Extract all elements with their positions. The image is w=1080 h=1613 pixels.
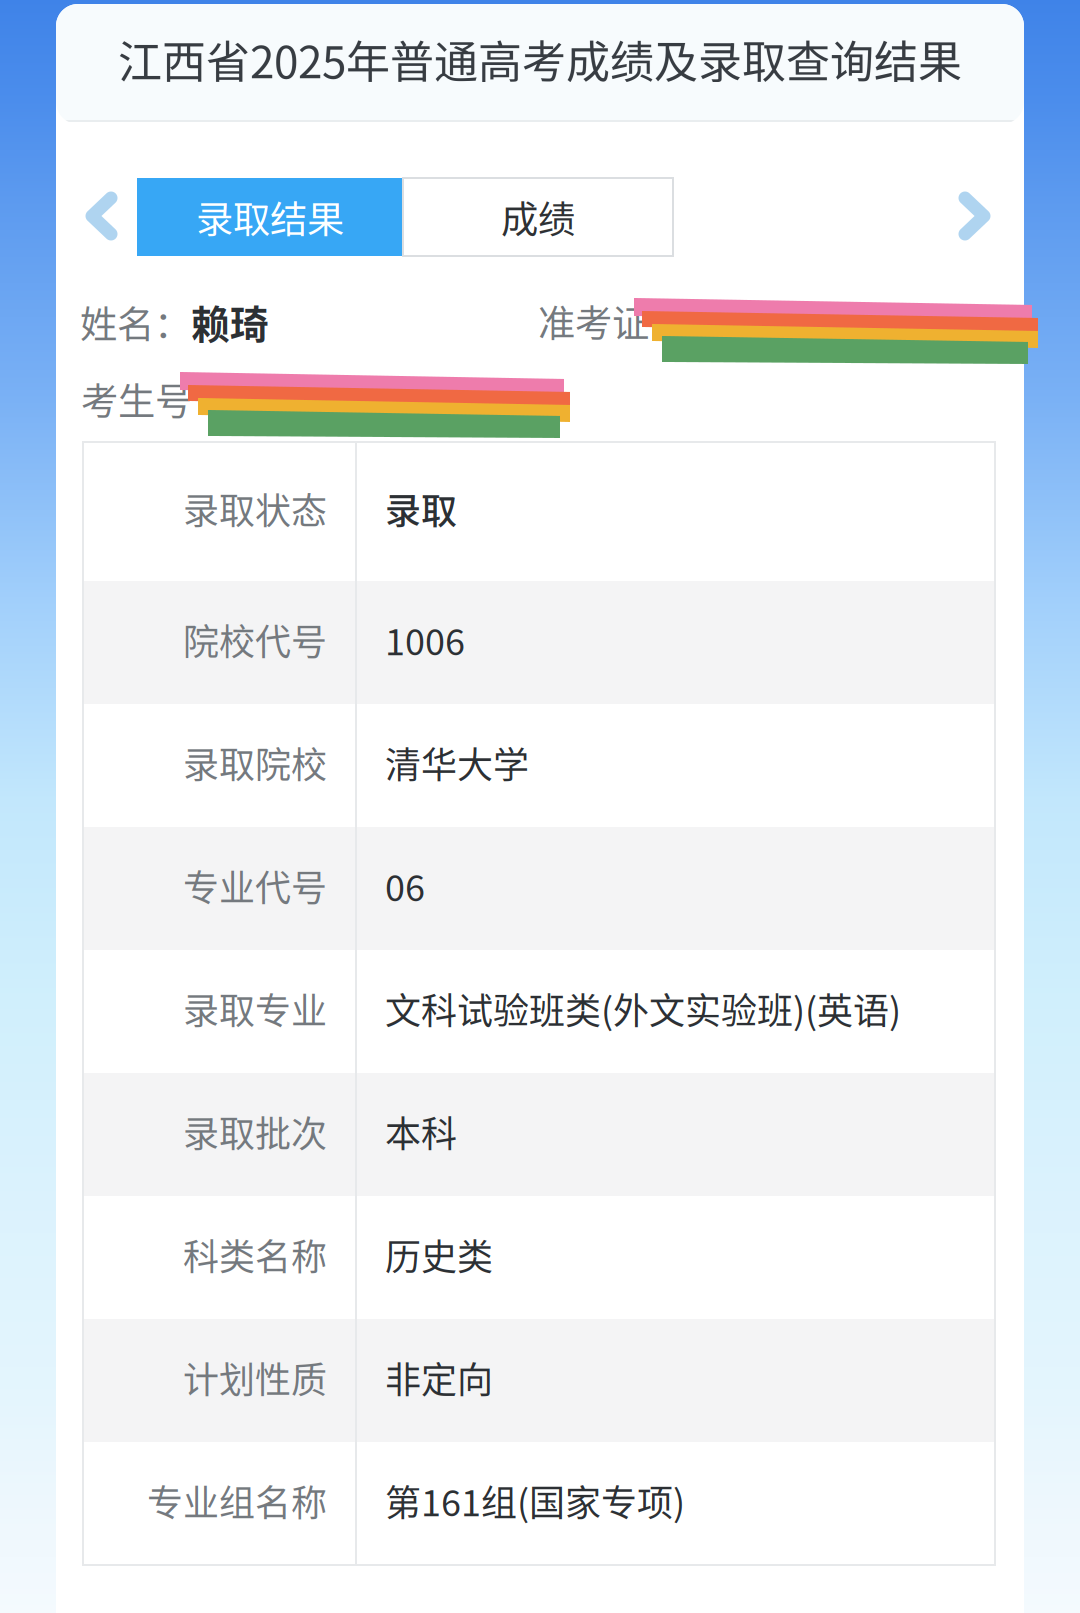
staticText: 姓名： xyxy=(80,295,191,349)
staticText: 录取状态 xyxy=(183,482,327,534)
staticText: 录取专业 xyxy=(183,982,327,1034)
staticText: 录取院校 xyxy=(183,736,327,788)
staticText: 江西省2025年普通高考成绩及录取查询结果 xyxy=(118,27,962,91)
staticText: 录取 xyxy=(385,482,457,534)
staticText: 文科试验班类(外文实验班)(英语) xyxy=(385,982,901,1034)
staticText: 历史类 xyxy=(385,1228,493,1280)
staticText: 06 xyxy=(385,859,425,911)
staticText: 成绩 xyxy=(501,190,575,244)
button[interactable]: 上一项 xyxy=(85,191,119,241)
staticText: 非定向 xyxy=(385,1351,493,1403)
staticText: 第161组(国家专项) xyxy=(385,1474,685,1526)
button[interactable]: 成绩 xyxy=(403,178,673,256)
staticText: 计划性质 xyxy=(183,1351,327,1403)
staticText: 1006 xyxy=(385,613,465,665)
staticText: 科类名称 xyxy=(183,1228,327,1280)
staticText: 院校代号 xyxy=(183,613,327,665)
staticText: 录取结果 xyxy=(196,190,344,244)
button[interactable]: 录取结果 xyxy=(137,178,403,256)
staticText: 专业组名称 xyxy=(147,1474,327,1526)
staticText: 赖琦 xyxy=(191,294,269,350)
button[interactable]: 下一项 xyxy=(957,191,991,241)
staticText: 准考证号 xyxy=(538,294,686,348)
staticText: 录取批次 xyxy=(183,1105,327,1157)
staticText: 本科 xyxy=(385,1105,457,1157)
staticText: 清华大学 xyxy=(385,736,529,788)
staticText: 考生号 xyxy=(81,372,192,426)
staticText: 专业代号 xyxy=(183,859,327,911)
